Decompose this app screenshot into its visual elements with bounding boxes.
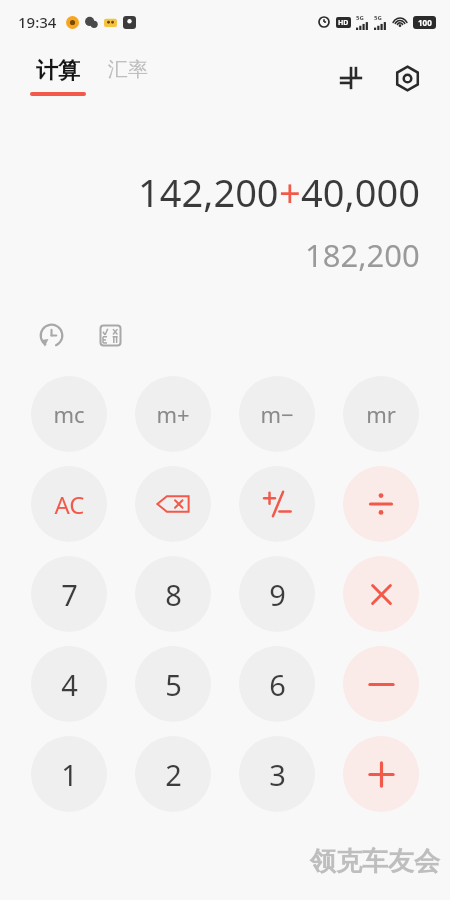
- button[interactable]: Toggle sign: [239, 466, 315, 542]
- button[interactable]: 汇率: [108, 57, 148, 82]
- button[interactable]: Scientific mode: [93, 318, 127, 352]
- staticText: 9: [269, 575, 286, 614]
- staticText: 4: [61, 665, 78, 704]
- button[interactable]: Backspace: [135, 466, 211, 542]
- staticText: 7: [61, 575, 78, 614]
- button[interactable]: 4: [31, 646, 107, 722]
- staticText: 领克车友会: [310, 845, 440, 878]
- staticText: 100: [418, 17, 432, 28]
- staticText: mr: [366, 399, 396, 429]
- button[interactable]: History: [34, 318, 68, 352]
- button[interactable]: 8: [135, 556, 211, 632]
- staticText: 142,200: [138, 166, 279, 218]
- button[interactable]: Plus: [343, 736, 419, 812]
- staticText: 3: [269, 755, 286, 794]
- staticText: mc: [53, 399, 85, 429]
- staticText: 汇率: [108, 57, 148, 82]
- button[interactable]: 5: [135, 646, 211, 722]
- staticText: m+: [156, 399, 190, 429]
- button[interactable]: 9: [239, 556, 315, 632]
- staticText: AC: [54, 488, 85, 521]
- staticText: 6: [269, 665, 286, 704]
- staticText: 5G: [374, 14, 382, 22]
- button[interactable]: 1: [31, 736, 107, 812]
- staticText: 40,000: [301, 166, 420, 218]
- button[interactable]: 2: [135, 736, 211, 812]
- button[interactable]: Divide: [343, 466, 419, 542]
- staticText: m−: [260, 399, 294, 429]
- button[interactable]: m−: [239, 376, 315, 452]
- button[interactable]: 计算: [30, 57, 86, 96]
- staticText: 计算: [36, 57, 80, 85]
- button[interactable]: Collapse: [330, 57, 372, 99]
- staticText: 2: [165, 755, 182, 794]
- staticText: 19:34: [18, 12, 57, 32]
- staticText: 8: [165, 575, 182, 614]
- button[interactable]: mr: [343, 376, 419, 452]
- staticText: 182,200: [305, 234, 420, 276]
- button[interactable]: 3: [239, 736, 315, 812]
- staticText: HD: [338, 18, 349, 28]
- button[interactable]: 7: [31, 556, 107, 632]
- button[interactable]: Multiply: [343, 556, 419, 632]
- button[interactable]: Minus: [343, 646, 419, 722]
- staticText: 5: [165, 665, 182, 704]
- staticText: 1: [61, 755, 78, 794]
- button[interactable]: 6: [239, 646, 315, 722]
- button[interactable]: m+: [135, 376, 211, 452]
- staticText: +: [279, 166, 301, 218]
- button[interactable]: mc: [31, 376, 107, 452]
- staticText: 5G: [356, 14, 364, 22]
- button[interactable]: AC: [31, 466, 107, 542]
- button[interactable]: Settings: [386, 57, 428, 99]
